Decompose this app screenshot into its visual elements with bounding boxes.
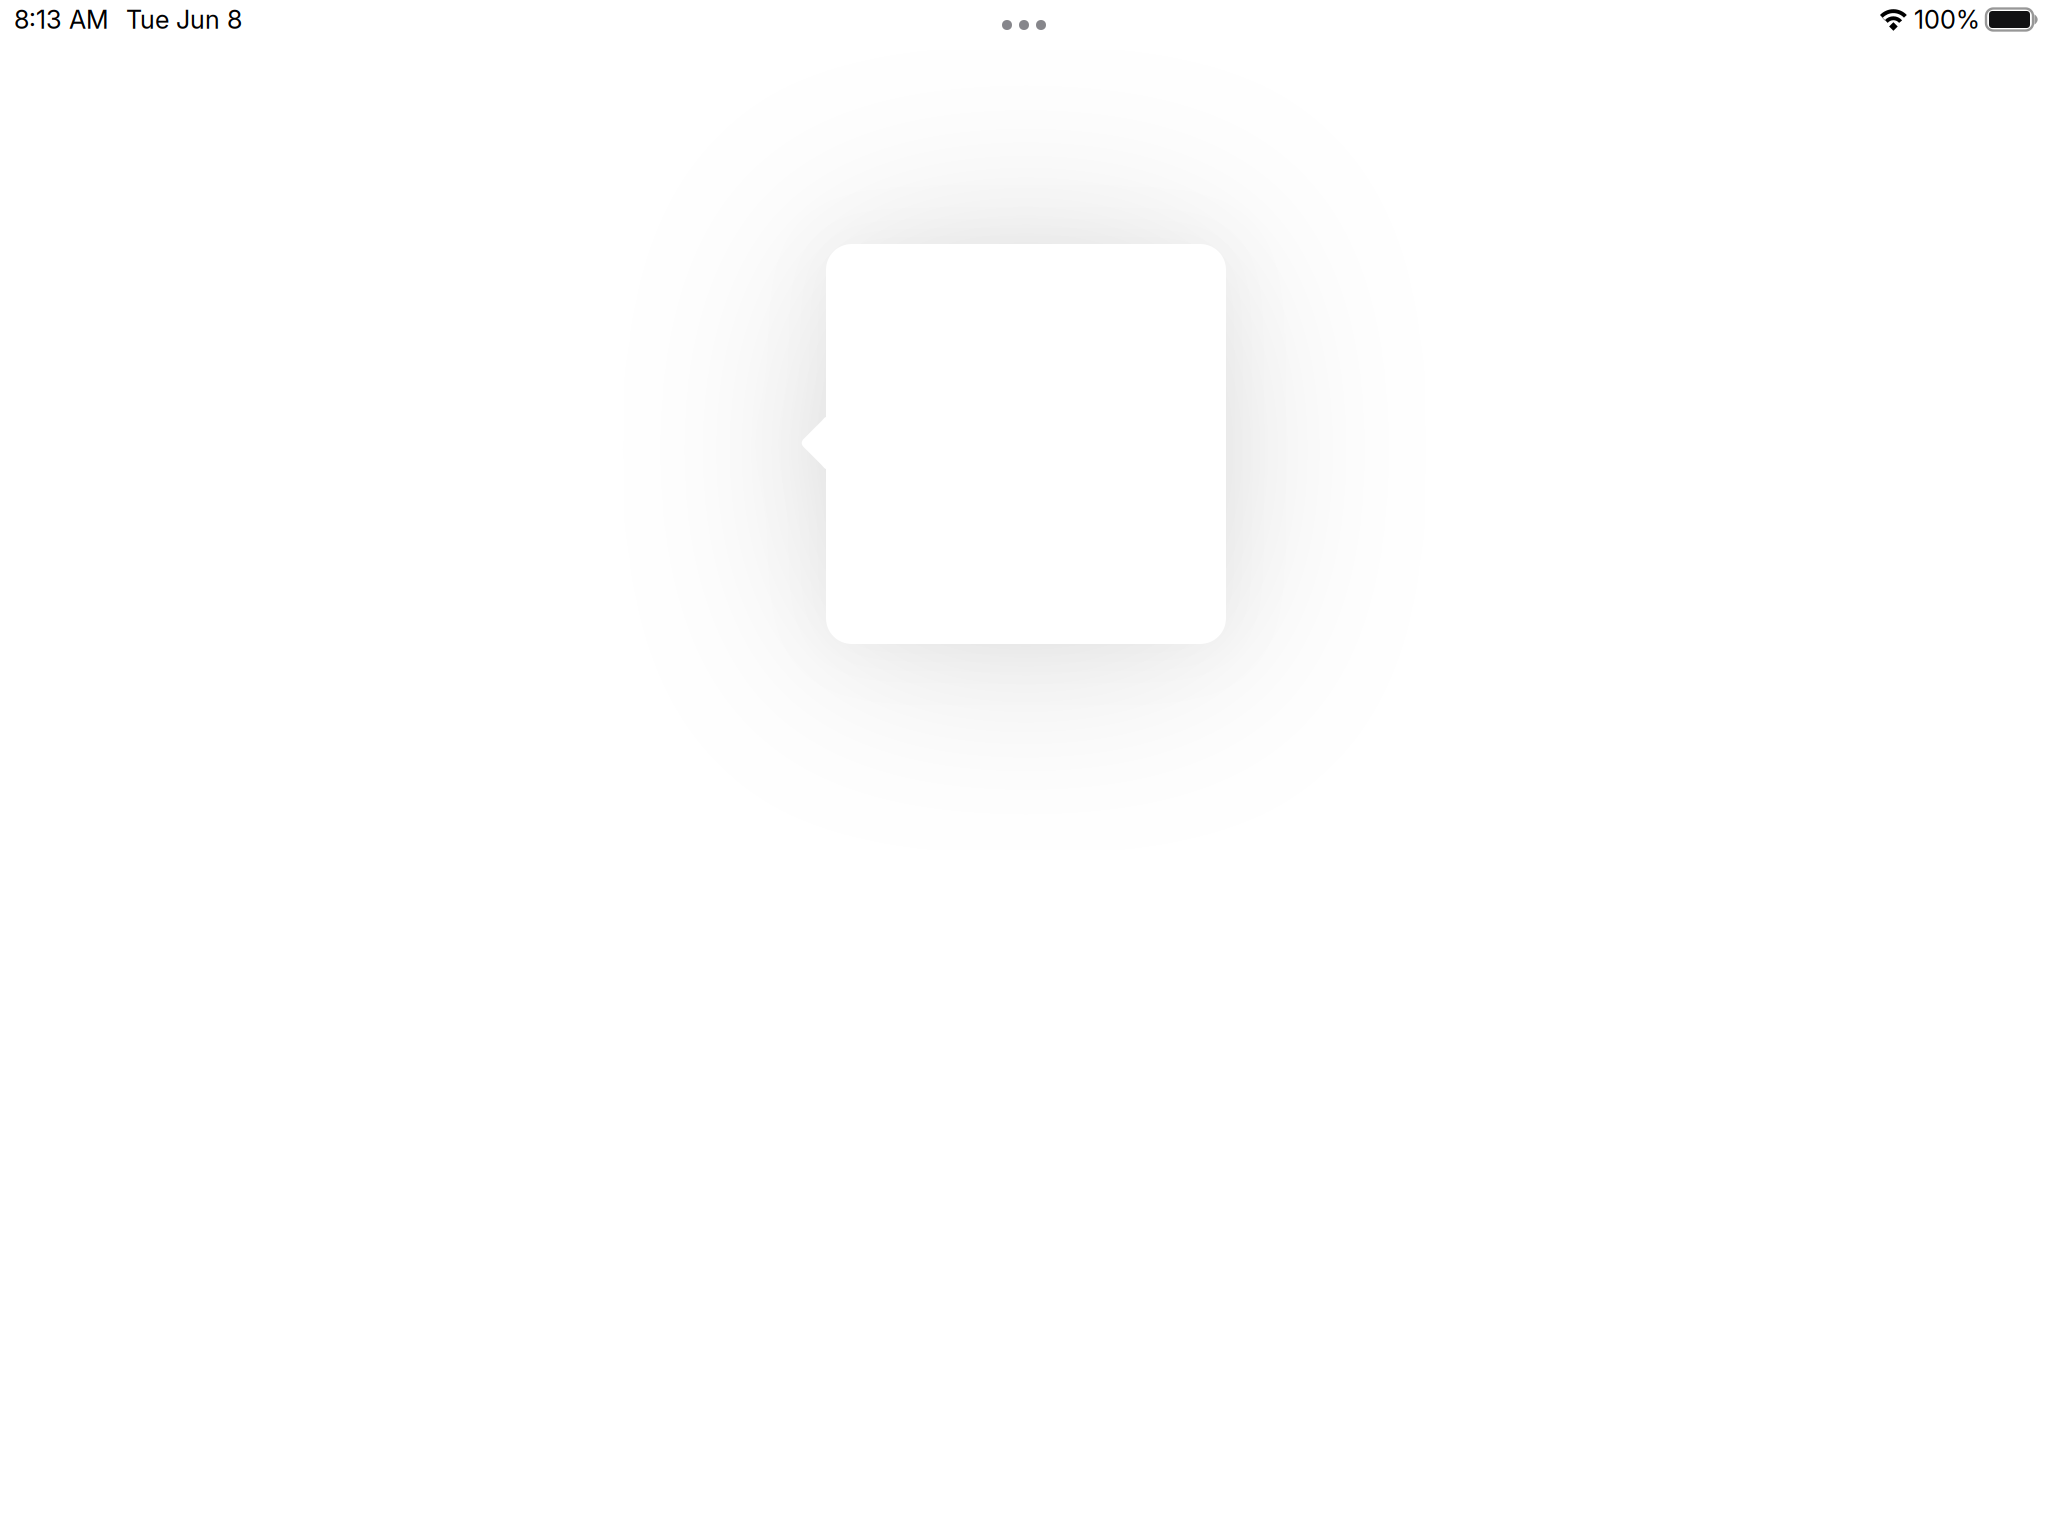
staticText: 8:13 AM (14, 4, 109, 35)
button[interactable]: Battery, Wi‑Fi and status (1875, 0, 2039, 39)
button[interactable]: Multitasking Controls (949, 0, 1099, 39)
staticText: 100% (1914, 4, 1980, 35)
staticText: Tue Jun 8 (126, 4, 242, 35)
button[interactable]: 8:13 AM (14, 0, 242, 39)
